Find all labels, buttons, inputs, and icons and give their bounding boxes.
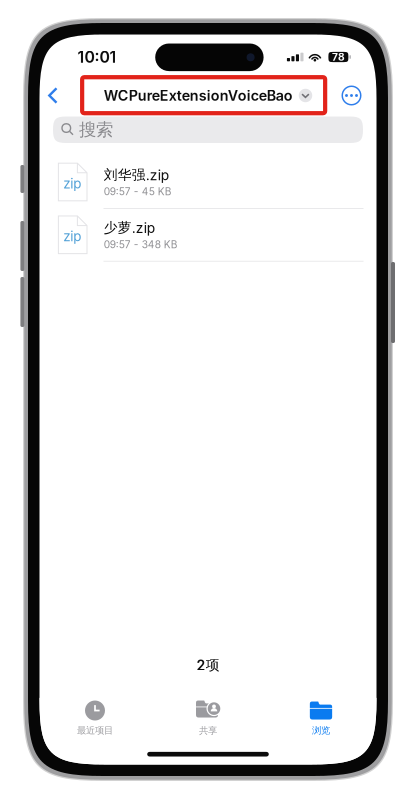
button[interactable]: 最近项目: [38, 698, 151, 739]
button[interactable]: zip: [39, 156, 376, 209]
staticText: 最近项目: [77, 724, 113, 736]
staticText: 搜索: [79, 119, 113, 141]
staticText: 09:57 - 45 KB: [104, 185, 172, 198]
staticText: 少萝.zip: [104, 219, 155, 236]
button[interactable]: 共享: [151, 698, 264, 739]
staticText: 共享: [199, 725, 217, 736]
button[interactable]: WCPureExtensionVoiceBao: [98, 83, 318, 107]
button[interactable]: 搜索: [53, 116, 363, 143]
staticText: 10:01: [77, 47, 116, 66]
staticText: 09:57 - 348 KB: [104, 238, 178, 251]
staticText: WCPureExtensionVoiceBao: [104, 87, 293, 104]
staticText: 浏览: [312, 724, 330, 736]
staticText: zip: [63, 228, 81, 244]
button[interactable]: 浏览: [264, 698, 377, 739]
button[interactable]: zip: [39, 209, 376, 262]
staticText: 刘华强.zip: [104, 166, 169, 183]
button[interactable]: 更多: [337, 79, 376, 111]
staticText: zip: [63, 175, 81, 192]
staticText: 2项: [196, 656, 219, 674]
button[interactable]: 返回: [39, 79, 76, 111]
staticText: 78: [332, 51, 345, 63]
